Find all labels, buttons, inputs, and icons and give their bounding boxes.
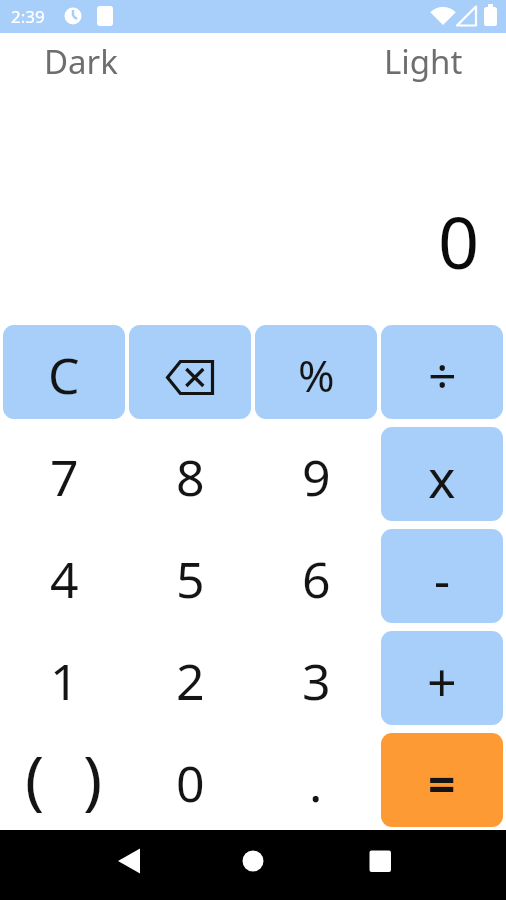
staticText: 0 <box>176 749 205 817</box>
staticText: + <box>427 646 457 717</box>
button[interactable]: ( <box>3 733 125 827</box>
staticText: = <box>428 751 456 816</box>
staticText: ÷ <box>428 341 457 409</box>
button[interactable]: x <box>381 427 503 521</box>
staticText: ) <box>83 735 103 822</box>
staticText: x <box>428 442 456 513</box>
staticText: 8 <box>176 443 205 511</box>
button[interactable]: + <box>381 631 503 725</box>
button[interactable]: 2 <box>129 631 251 725</box>
staticText: 2:39 <box>11 5 45 28</box>
button[interactable]: C <box>3 325 125 419</box>
staticText: Dark <box>44 39 118 82</box>
staticText: 4 <box>50 545 79 613</box>
staticText: 3 <box>302 647 331 715</box>
button[interactable]: . <box>255 733 377 827</box>
staticText: Light <box>384 39 463 82</box>
staticText: 7 <box>50 443 79 511</box>
button[interactable]: 6 <box>255 529 377 623</box>
staticText: 5 <box>176 545 205 613</box>
button[interactable]: 4 <box>3 529 125 623</box>
staticText: - <box>434 545 451 613</box>
button[interactable]: 5 <box>129 529 251 623</box>
button[interactable]: 1 <box>3 631 125 725</box>
button[interactable] <box>0 830 168 900</box>
staticText: % <box>298 345 335 405</box>
button[interactable] <box>168 830 337 900</box>
button[interactable]: - <box>381 529 503 623</box>
staticText: 9 <box>302 443 331 511</box>
button[interactable]: Light <box>370 33 477 88</box>
button[interactable]: 9 <box>255 427 377 521</box>
button[interactable] <box>337 830 506 900</box>
staticText: 2 <box>176 647 205 715</box>
staticText: C <box>48 341 80 409</box>
button[interactable]: ÷ <box>381 325 503 419</box>
staticText: 6 <box>302 545 331 613</box>
button[interactable]: % <box>255 325 377 419</box>
button[interactable]: 7 <box>3 427 125 521</box>
button[interactable]: 0 <box>129 733 251 827</box>
button[interactable] <box>129 325 251 419</box>
staticText: ( <box>25 735 45 822</box>
button[interactable]: Dark <box>30 33 132 88</box>
staticText: . <box>309 749 323 817</box>
button[interactable]: = <box>381 733 503 827</box>
staticText: 1 <box>50 647 79 715</box>
staticText: 0 <box>438 192 480 290</box>
button[interactable]: 8 <box>129 427 251 521</box>
button[interactable]: 3 <box>255 631 377 725</box>
